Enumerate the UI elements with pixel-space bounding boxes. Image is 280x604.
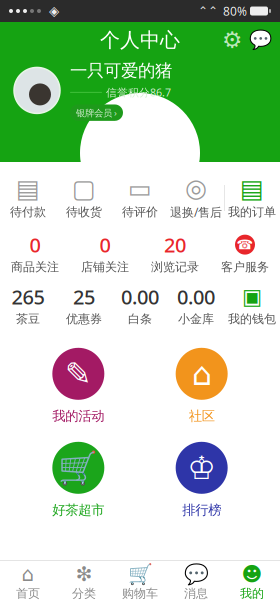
staticText: ▤ [16, 174, 40, 203]
staticText: 🛒 [58, 449, 98, 486]
staticText: 购物车 [122, 586, 158, 601]
staticText: 茶豆 [16, 312, 40, 326]
staticText: ✎ [65, 356, 92, 392]
staticText: 退换/售后 [170, 204, 222, 220]
staticText: 待付款 [10, 205, 46, 219]
button[interactable]: ⌂ [157, 348, 247, 424]
staticText: 信誉积分86.7 [106, 85, 171, 99]
button[interactable]: ▢ [56, 176, 112, 220]
button[interactable]: ◎ [168, 176, 224, 220]
button[interactable]: 0 [0, 234, 70, 274]
staticText: 商品关注 [11, 260, 59, 274]
button[interactable]: 25 [56, 286, 112, 326]
button[interactable]: 0.00 [168, 286, 224, 326]
button[interactable]: ✎ [33, 348, 123, 424]
button[interactable]: 20 [140, 234, 210, 274]
staticText: 个人中心 [100, 28, 180, 52]
staticText: ▭ [128, 174, 152, 203]
staticText: 💬 [183, 563, 208, 586]
button[interactable]: ▤ [224, 176, 280, 220]
button[interactable]: ▭ [112, 176, 168, 220]
button[interactable]: ❇ [56, 561, 112, 604]
button[interactable]: ⌂ [0, 561, 56, 604]
staticText: 小金库 [178, 312, 214, 326]
button[interactable]: ☎ [210, 234, 280, 274]
staticText: 0.00 [121, 283, 159, 310]
staticText: 社区 [189, 408, 215, 424]
staticText: 0.00 [177, 283, 215, 310]
button[interactable]: ▤ [0, 176, 56, 220]
staticText: 20 [164, 231, 186, 258]
staticText: 好茶超市 [52, 502, 104, 518]
staticText: 待评价 [122, 205, 158, 219]
staticText: 店铺关注 [81, 260, 129, 274]
button[interactable]: 💬 [168, 561, 224, 604]
staticText: 待收货 [66, 205, 102, 219]
staticText: 25 [73, 283, 95, 310]
button[interactable]: 0 [70, 234, 140, 274]
button[interactable]: 0.00 [112, 286, 168, 326]
staticText: 我的钱包 [228, 312, 276, 326]
staticText: 80% [223, 3, 247, 19]
staticText: 我的 [240, 586, 264, 601]
staticText: ☎ [236, 237, 253, 252]
button[interactable]: 🛒 [33, 442, 123, 518]
staticText: 🛒 [127, 563, 152, 586]
staticText: ▤ [240, 174, 264, 203]
staticText: 0 [99, 231, 110, 258]
staticText: ◎ [185, 174, 207, 202]
button[interactable]: 消息 [246, 26, 274, 54]
button[interactable]: ▣ [224, 286, 280, 326]
staticText: ⌂ [21, 563, 34, 585]
staticText: ▣ [242, 284, 262, 309]
button[interactable]: 🛒 [112, 561, 168, 604]
staticText: 0 [29, 231, 40, 258]
button[interactable]: 银牌会员 › [70, 104, 123, 121]
staticText: 银牌会员 › [76, 106, 117, 119]
button[interactable]: 设置 [218, 26, 246, 54]
staticText: 消息 [184, 586, 208, 601]
staticText: 优惠券 [66, 312, 102, 326]
button[interactable]: ☻ [224, 561, 280, 604]
staticText: 💬 [248, 29, 271, 51]
button[interactable]: 265 [0, 286, 56, 326]
staticText: 首页 [16, 586, 40, 601]
staticText: ☻ [241, 563, 262, 585]
staticText: 白条 [128, 312, 152, 326]
staticText: ❇ [75, 563, 92, 585]
staticText: 分类 [72, 586, 96, 601]
staticText: ⌂ [192, 356, 212, 392]
staticText: 265 [11, 283, 44, 310]
staticText: ◈ [49, 3, 59, 18]
staticText: 我的订单 [228, 205, 276, 219]
staticText: ⌃⌃ [198, 4, 218, 18]
staticText: ♔ [187, 450, 216, 486]
staticText: 客户服务 [221, 260, 269, 274]
staticText: ⚙ [222, 27, 242, 53]
staticText: 一只可爱的猪 [70, 60, 172, 81]
staticText: ▢ [72, 174, 96, 203]
staticText: 浏览记录 [151, 260, 199, 274]
button[interactable]: ♔ [157, 442, 247, 518]
staticText: 我的活动 [52, 408, 104, 424]
staticText: 排行榜 [182, 502, 221, 518]
